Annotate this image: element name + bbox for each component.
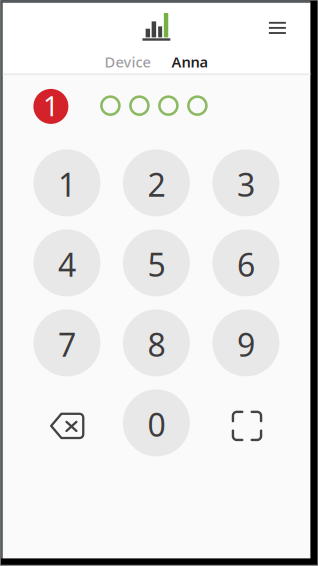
staticText: 8 (147, 323, 165, 366)
button[interactable]: Anna (171, 52, 208, 72)
staticText: 4 (58, 243, 76, 286)
button[interactable]: 9 (212, 309, 279, 376)
staticText: 3 (237, 163, 255, 206)
staticText: 9 (237, 323, 255, 366)
staticText: Anna (171, 52, 208, 72)
button[interactable]: 8 (123, 309, 190, 376)
button[interactable]: 0 (123, 389, 190, 456)
staticText: 2 (147, 163, 165, 206)
button[interactable]: Scan (212, 389, 279, 456)
staticText: Device (104, 52, 150, 72)
button[interactable]: 7 (33, 309, 100, 376)
staticText: 1 (43, 87, 59, 124)
button[interactable]: Menu (258, 9, 296, 47)
button[interactable]: 3 (212, 149, 279, 216)
staticText: 0 (147, 403, 165, 446)
button[interactable]: Device (104, 52, 150, 72)
button[interactable]: 1 (33, 149, 100, 216)
button[interactable]: 5 (123, 229, 190, 296)
button[interactable]: 4 (33, 229, 100, 296)
staticText: 7 (58, 323, 76, 366)
staticText: 1 (58, 163, 76, 206)
button[interactable]: Delete (33, 389, 100, 456)
button[interactable]: 2 (123, 149, 190, 216)
button[interactable]: 6 (212, 229, 279, 296)
staticText: 5 (147, 243, 165, 286)
staticText: 6 (237, 243, 255, 286)
